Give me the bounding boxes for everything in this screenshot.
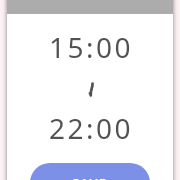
staticText: 15:00 bbox=[49, 28, 134, 62]
button[interactable]: SAVE bbox=[30, 163, 150, 180]
other: until bbox=[86, 83, 94, 96]
button[interactable]: 15:00 bbox=[7, 28, 173, 62]
button[interactable]: 22:00 bbox=[7, 109, 173, 143]
staticText: SAVE bbox=[72, 174, 108, 180]
staticText: 22:00 bbox=[49, 109, 134, 143]
